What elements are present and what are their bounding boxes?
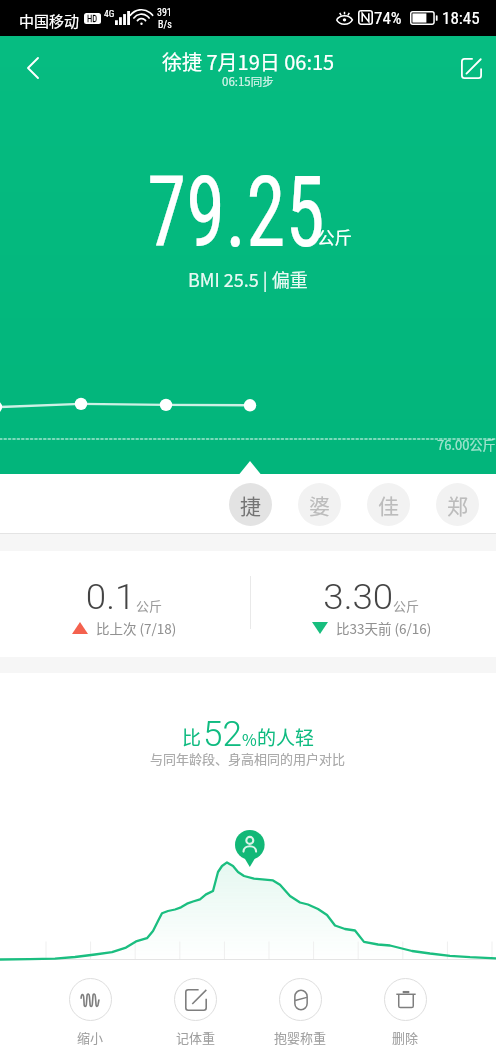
staticText: 18:45 — [442, 8, 480, 28]
button[interactable]: 婆 — [298, 483, 341, 526]
staticText: 79.25 — [147, 155, 325, 270]
button[interactable]: 郑 — [436, 483, 479, 526]
staticText: 婆 — [309, 490, 330, 520]
staticText: B/s — [158, 19, 172, 31]
button[interactable]: Share — [447, 44, 495, 92]
staticText: 4G — [104, 8, 115, 19]
staticText: % — [242, 727, 257, 750]
staticText: 0.1 — [86, 577, 136, 618]
staticText: 公斤 — [317, 224, 352, 249]
staticText: BMI 25.5 | 偏重 — [188, 266, 308, 292]
staticText: 391 — [157, 7, 172, 19]
button[interactable]: 捷 — [229, 483, 272, 526]
staticText: 74% — [374, 8, 402, 28]
button[interactable]: 佳 — [367, 483, 410, 526]
staticText: 比 — [182, 723, 202, 751]
staticText: 抱婴称重 — [274, 1028, 327, 1047]
staticText: 的人轻 — [257, 723, 315, 751]
staticText: 公斤 — [393, 596, 420, 615]
staticText: 比上次 (7/18) — [96, 618, 177, 638]
button[interactable]: Back — [9, 44, 57, 92]
staticText: 52 — [203, 714, 242, 755]
button[interactable]: 记体重 — [143, 969, 248, 1047]
staticText: 记体重 — [176, 1028, 216, 1047]
staticText: 公斤 — [136, 596, 163, 615]
staticText: HD — [87, 14, 98, 24]
staticText: 缩小 — [77, 1028, 104, 1047]
staticText: 76.00公斤 — [437, 435, 496, 454]
button[interactable]: 缩小 — [38, 969, 143, 1047]
staticText: 比33天前 (6/16) — [336, 618, 432, 638]
staticText: 徐捷 7月19日 06:15 — [162, 47, 335, 76]
staticText: 3.30 — [323, 577, 394, 618]
button[interactable]: 0.1 — [0, 551, 248, 638]
staticText: 06:15同步 — [222, 73, 274, 90]
button[interactable]: 删除 — [353, 969, 458, 1047]
staticText: 郑 — [447, 490, 468, 520]
staticText: 佳 — [378, 490, 399, 520]
staticText: 删除 — [392, 1028, 419, 1047]
button[interactable]: 3.30 — [248, 551, 496, 638]
staticText: 与同年龄段、身高相同的用户对比 — [150, 749, 346, 768]
staticText: 中国移动 — [19, 10, 80, 32]
button[interactable]: 抱婴称重 — [248, 969, 353, 1047]
staticText: 捷 — [240, 490, 261, 520]
